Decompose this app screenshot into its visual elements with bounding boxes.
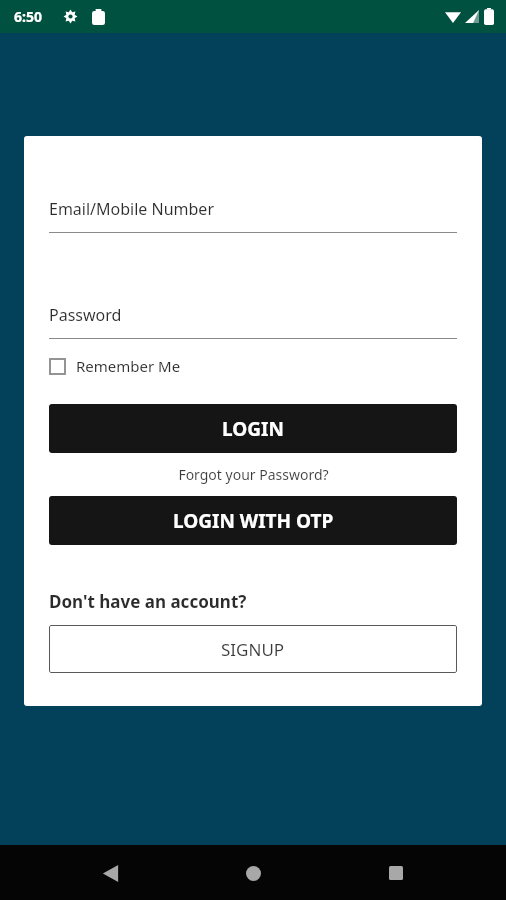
button[interactable]: LOGIN xyxy=(49,404,457,453)
button[interactable]: Remember Me xyxy=(49,356,457,376)
staticText: Don't have an account? xyxy=(49,590,247,613)
staticText: Forgot your Password? xyxy=(178,465,329,484)
button[interactable]: Home xyxy=(233,853,273,893)
button[interactable]: Recent apps xyxy=(376,853,416,893)
button[interactable]: SIGNUP xyxy=(49,625,457,673)
staticText: Password xyxy=(49,304,122,326)
staticText: SIGNUP xyxy=(221,638,285,661)
button[interactable]: Back xyxy=(90,853,130,893)
button[interactable]: Email/Mobile Number xyxy=(49,198,457,233)
staticText: 6:50 xyxy=(14,7,42,26)
staticText: LOGIN WITH OTP xyxy=(173,508,334,534)
staticText: Email/Mobile Number xyxy=(49,198,214,220)
button[interactable]: Password xyxy=(49,304,457,339)
staticText: Remember Me xyxy=(76,356,181,376)
staticText: LOGIN xyxy=(222,416,284,442)
button[interactable]: LOGIN WITH OTP xyxy=(49,496,457,545)
button[interactable]: Forgot your Password? xyxy=(49,465,457,484)
